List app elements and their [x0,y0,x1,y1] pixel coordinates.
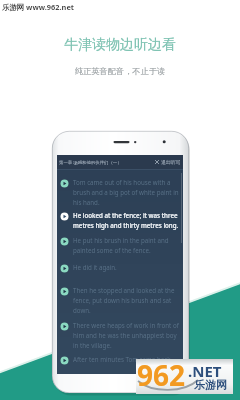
other: Play sentence [60,237,69,246]
button[interactable]: Play sentence [57,263,183,272]
other: Play sentence [60,287,69,296]
button[interactable]: 退出听写 [161,159,181,165]
button[interactable]: Play sentence [57,211,183,230]
staticText: There were heaps of work in front of him… [73,321,180,350]
staticText: 962 [137,356,186,391]
other: Play sentence [60,179,69,188]
button[interactable]: Play sentence [57,178,183,207]
other: Play sentence [60,264,69,273]
staticText: 第一章 汤姆和他的伙伴们（一） [59,159,122,165]
button[interactable]: Close [155,160,159,164]
button[interactable]: Play sentence [57,286,183,315]
staticText: Tom came out of his house with a brush a… [73,178,180,207]
button[interactable]: Play sentence [57,321,183,350]
other: Play sentence [60,356,69,365]
staticText: 纯正英音配音，不止于读 [75,66,166,76]
staticText: He looked at the fence; it was three met… [73,211,180,230]
staticText: Then he stopped and looked at the fence,… [73,286,180,315]
staticText: He put his brush in the paint and painte… [73,236,180,255]
staticText: 乐游网 www.962.net [2,2,75,12]
staticText: 牛津读物边听边看 [64,36,176,54]
staticText: He did it again. [73,263,117,271]
staticText: 乐游网 [194,378,227,392]
other: Play sentence [60,322,69,331]
staticText: .NET [188,361,222,381]
button[interactable]: Play sentence [57,236,183,255]
button[interactable]: Play sentence [57,355,183,364]
staticText: After ten minutes Tom came back. [73,355,173,363]
other: Play sentence [60,212,69,221]
